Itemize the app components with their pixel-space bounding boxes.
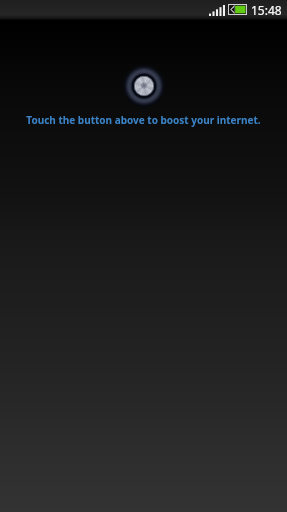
staticText: Touch the button above to boost your int… — [0, 113, 287, 127]
button[interactable]: Boost internet — [114, 56, 174, 116]
staticText: 15:48 — [251, 2, 282, 18]
